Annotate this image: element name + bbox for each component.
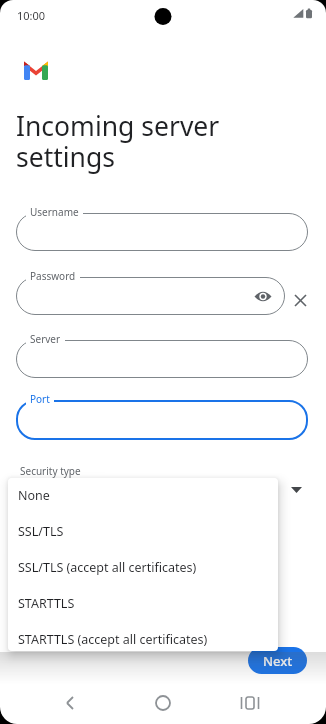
staticText: Username xyxy=(30,205,79,219)
button[interactable] xyxy=(55,688,85,718)
button[interactable] xyxy=(16,277,285,315)
button[interactable]: SSL/TLS xyxy=(8,513,278,549)
button[interactable]: STARTTLS xyxy=(8,585,278,621)
staticText: STARTTLS xyxy=(18,595,75,612)
staticText: SSL/TLS (accept all certificates) xyxy=(18,559,197,576)
button[interactable]: None xyxy=(8,478,278,513)
staticText: Incoming server settings xyxy=(16,108,220,175)
button[interactable] xyxy=(235,688,265,718)
staticText: Password xyxy=(30,269,76,283)
staticText: Server xyxy=(30,332,61,346)
button[interactable]: SSL/TLS (accept all certificates) xyxy=(8,549,278,585)
staticText: None xyxy=(18,487,50,504)
staticText: Next xyxy=(263,652,293,670)
button[interactable] xyxy=(148,688,178,718)
staticText: Security type xyxy=(20,464,81,478)
button[interactable] xyxy=(16,400,308,440)
staticText: 10:00 xyxy=(17,8,46,23)
button[interactable]: STARTTLS (accept all certificates) xyxy=(8,621,278,651)
button[interactable] xyxy=(290,290,311,311)
staticText: STARTTLS (accept all certificates) xyxy=(18,631,208,648)
button[interactable] xyxy=(16,213,308,251)
button[interactable] xyxy=(16,340,308,378)
button[interactable]: Next xyxy=(248,647,307,674)
staticText: SSL/TLS xyxy=(18,523,64,540)
staticText: Port xyxy=(30,392,50,406)
